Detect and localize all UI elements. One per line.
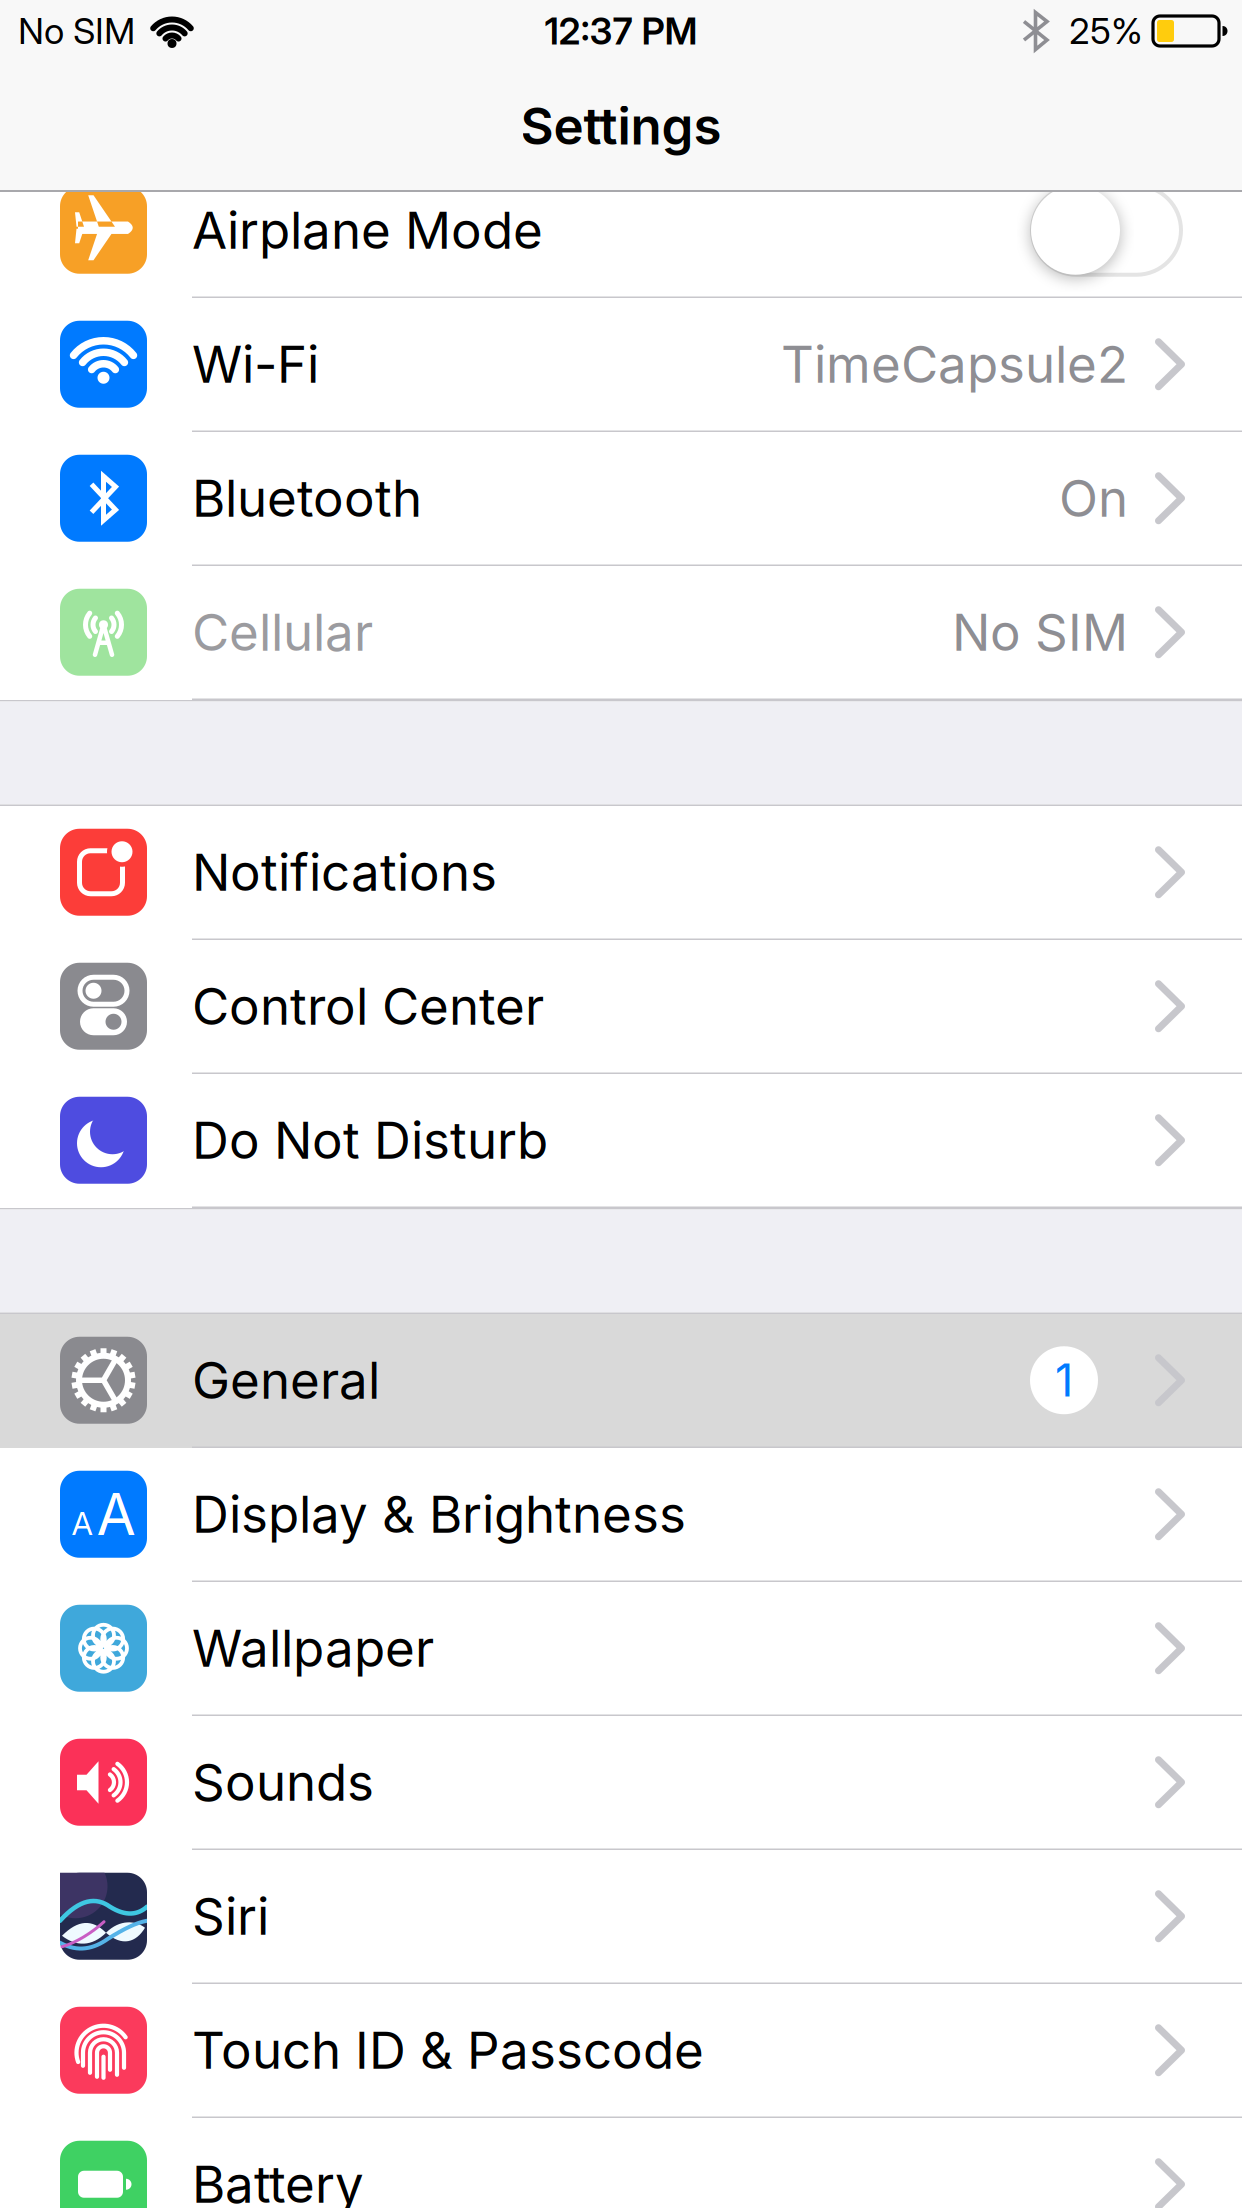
staticText: Battery (192, 2153, 364, 2208)
button[interactable]: Sounds (0, 1716, 1242, 1850)
staticText: Wallpaper (192, 1617, 434, 1679)
staticText: Notifications (192, 841, 497, 903)
button[interactable]: A (0, 1448, 1242, 1582)
button[interactable]: Siri (0, 1850, 1242, 1984)
staticText: 1 (1055, 1353, 1073, 1407)
staticText: A (96, 1480, 135, 1549)
button[interactable]: Cellular (0, 566, 1242, 700)
staticText: 12:37 PM (544, 9, 697, 53)
staticText: Control Center (192, 975, 544, 1037)
staticText: Sounds (192, 1751, 374, 1813)
button[interactable]: General (0, 1314, 1242, 1448)
button[interactable]: Wallpaper (0, 1582, 1242, 1716)
staticText: Bluetooth (192, 467, 422, 529)
staticText: TimeCapsule2 (781, 333, 1128, 395)
button[interactable]: Bluetooth (0, 432, 1242, 566)
staticText: Settings (520, 95, 721, 157)
button[interactable]: Battery (0, 2118, 1242, 2208)
staticText: Display & Brightness (192, 1483, 686, 1545)
staticText: Touch ID & Passcode (192, 2019, 704, 2081)
staticText: 25% (1069, 9, 1143, 53)
staticText: Cellular (192, 601, 373, 663)
staticText: A (71, 1504, 92, 1543)
staticText: Airplane Mode (192, 199, 543, 261)
staticText: Siri (192, 1885, 269, 1947)
staticText: Wi-Fi (192, 333, 319, 395)
button[interactable]: Do Not Disturb (0, 1074, 1242, 1208)
staticText: No SIM (18, 9, 135, 53)
button[interactable]: Notifications (0, 806, 1242, 940)
staticText: General (192, 1349, 380, 1411)
staticText: Do Not Disturb (192, 1109, 548, 1171)
staticText: No SIM (952, 601, 1128, 663)
staticText: On (1059, 467, 1128, 529)
button[interactable]: Touch ID & Passcode (0, 1984, 1242, 2118)
button[interactable]: Wi-Fi (0, 298, 1242, 432)
button[interactable]: Control Center (0, 940, 1242, 1074)
button[interactable]: Airplane Mode (1030, 184, 1183, 277)
